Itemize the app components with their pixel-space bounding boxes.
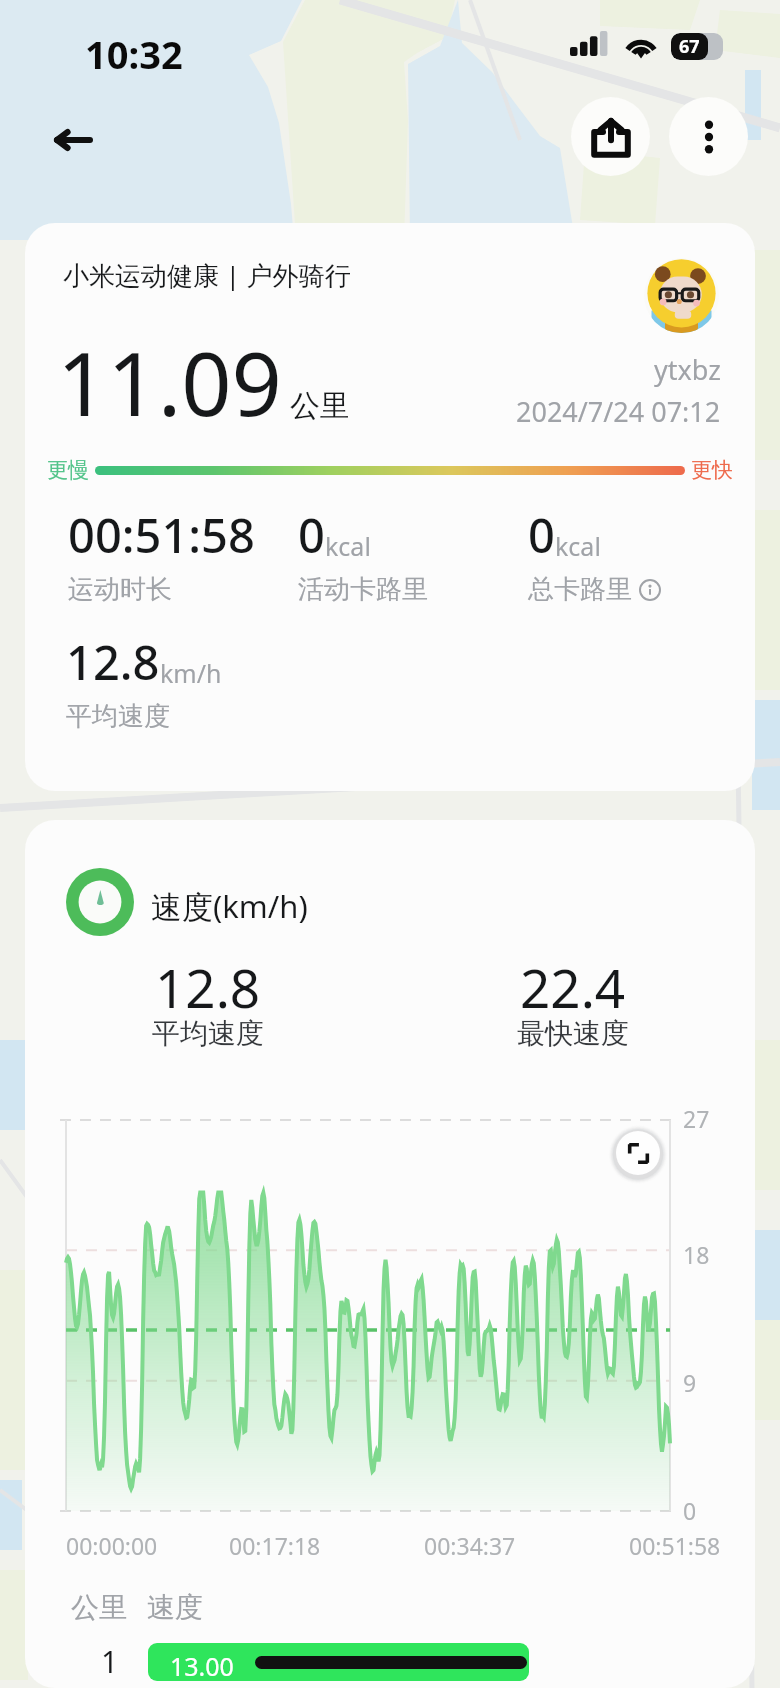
- staticText: 00:51:58: [68, 503, 255, 567]
- button[interactable]: Expand chart: [616, 1131, 660, 1175]
- button[interactable]: Share: [571, 97, 650, 176]
- staticText: 13.00: [170, 1649, 234, 1681]
- staticText: ytxbz: [654, 351, 721, 388]
- staticText: 更快: [691, 457, 733, 483]
- button[interactable]: More options: [669, 97, 748, 176]
- staticText: 00:34:37: [424, 1530, 516, 1561]
- staticText: 18: [683, 1239, 710, 1270]
- staticText: 00:51:58: [629, 1530, 721, 1561]
- staticText: 更慢: [47, 457, 89, 483]
- staticText: 12.8: [155, 951, 261, 1023]
- staticText: 2024/7/24 07:12: [516, 393, 721, 430]
- staticText: 27: [683, 1103, 710, 1134]
- staticText: km/h: [160, 656, 222, 690]
- staticText: 0: [298, 503, 325, 567]
- staticText: kcal: [555, 529, 601, 563]
- staticText: 最快速度: [517, 1016, 629, 1051]
- staticText: 22.4: [520, 951, 626, 1023]
- staticText: 11.09: [57, 322, 282, 442]
- staticText: 12.8: [66, 630, 160, 694]
- staticText: 67: [679, 34, 700, 59]
- staticText: 速度(km/h): [151, 885, 308, 927]
- staticText: 10:32: [85, 28, 183, 80]
- staticText: 00:17:18: [229, 1530, 321, 1561]
- staticText: 运动时长: [68, 573, 172, 606]
- staticText: 总卡路里: [528, 573, 632, 606]
- button[interactable]: Back: [44, 111, 102, 169]
- staticText: 0: [683, 1495, 697, 1526]
- staticText: 公里: [290, 387, 350, 425]
- staticText: 公里: [71, 1590, 127, 1625]
- staticText: 活动卡路里: [298, 573, 428, 606]
- staticText: 平均速度: [152, 1016, 264, 1051]
- staticText: 1: [101, 1641, 119, 1682]
- staticText: kcal: [325, 529, 371, 563]
- staticText: 9: [683, 1367, 697, 1398]
- staticText: 00:00:00: [66, 1530, 158, 1561]
- staticText: 0: [528, 503, 555, 567]
- staticText: 速度: [147, 1590, 203, 1625]
- staticText: 平均速度: [66, 700, 170, 733]
- staticText: 小米运动健康 | 户外骑行: [63, 257, 351, 293]
